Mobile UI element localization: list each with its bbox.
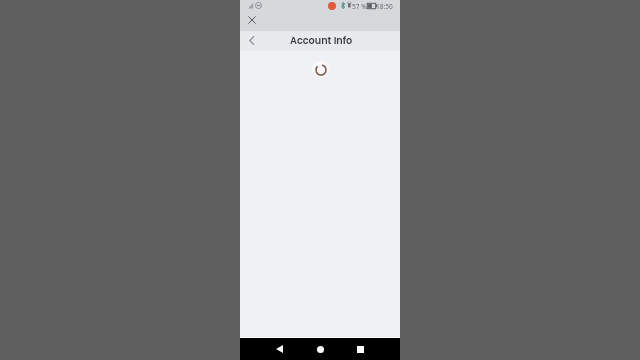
- button[interactable]: Back: [270, 340, 288, 358]
- staticText: 57 %: [352, 2, 367, 11]
- button[interactable]: Home: [311, 340, 329, 358]
- button[interactable]: Close: [245, 13, 259, 27]
- staticText: 18:50: [376, 2, 393, 11]
- button[interactable]: Back: [245, 34, 257, 46]
- staticText: Account Info: [290, 34, 353, 48]
- button[interactable]: Recents: [351, 340, 369, 358]
